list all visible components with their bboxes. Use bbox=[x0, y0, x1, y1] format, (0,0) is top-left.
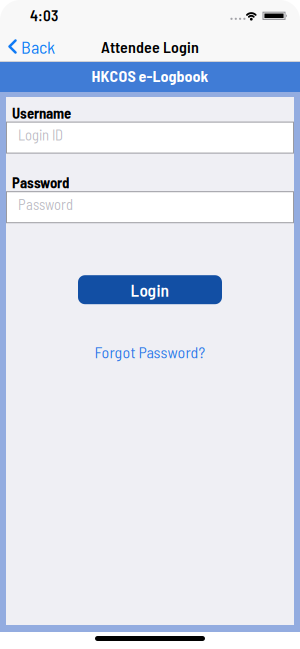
staticText: Back bbox=[21, 36, 55, 57]
staticText: Password bbox=[18, 195, 73, 213]
button[interactable]: Forgot Password? bbox=[94, 342, 205, 361]
staticText: Username bbox=[12, 104, 71, 122]
button[interactable]: Login ID bbox=[6, 122, 294, 154]
button[interactable]: Login bbox=[78, 275, 222, 304]
staticText: Password bbox=[12, 174, 69, 191]
button[interactable]: Back bbox=[0, 36, 55, 57]
staticText: Attendee Login bbox=[101, 37, 199, 56]
staticText: Login bbox=[130, 279, 169, 300]
staticText: Login ID bbox=[18, 126, 63, 143]
button[interactable]: Password bbox=[6, 191, 294, 223]
staticText: 4:03 bbox=[30, 6, 58, 24]
staticText: Forgot Password? bbox=[94, 342, 205, 361]
staticText: HKCOS e-Logbook bbox=[91, 66, 208, 85]
